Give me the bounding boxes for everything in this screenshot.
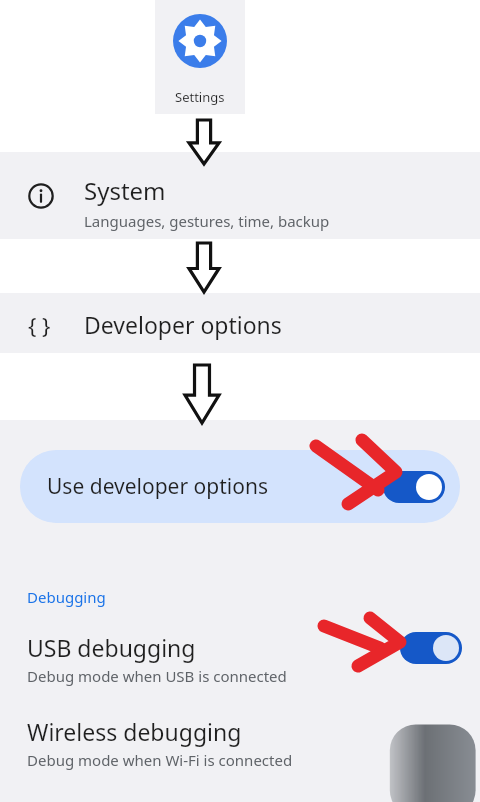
button[interactable]: Use developer options: [20, 450, 460, 523]
staticText: Settings: [175, 88, 225, 106]
staticText: System: [84, 174, 166, 207]
button[interactable]: Wireless debugging: [0, 708, 480, 788]
button[interactable]: Settings app icon: [155, 0, 245, 114]
button[interactable]: System: [0, 152, 480, 239]
staticText: Debugging: [27, 587, 106, 607]
button[interactable]: Toggle switch, on: [400, 632, 462, 664]
staticText: { }: [28, 310, 51, 340]
button[interactable]: USB debugging: [0, 620, 480, 698]
staticText: Wireless debugging: [27, 716, 242, 747]
staticText: USB debugging: [27, 632, 196, 663]
staticText: Use developer options: [47, 472, 268, 501]
staticText: Languages, gestures, time, backup: [84, 211, 330, 231]
staticText: Developer options: [84, 309, 282, 340]
button[interactable]: { }: [0, 293, 480, 353]
staticText: Debug mode when Wi-Fi is connected: [27, 750, 293, 770]
staticText: Debug mode when USB is connected: [27, 666, 287, 686]
button[interactable]: Toggle switch, on: [383, 471, 445, 503]
